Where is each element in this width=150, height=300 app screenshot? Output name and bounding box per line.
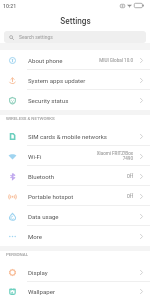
staticText: Bluetooth bbox=[28, 173, 55, 180]
staticText: WIRELESS & NETWORKS bbox=[6, 116, 55, 121]
staticText: More bbox=[28, 233, 43, 240]
staticText: Security status bbox=[28, 97, 69, 104]
button[interactable]: Portable hotspot bbox=[0, 186, 150, 206]
staticText: Portable hotspot bbox=[28, 193, 74, 200]
staticText: About phone bbox=[28, 57, 63, 64]
button[interactable]: Bluetooth bbox=[0, 166, 150, 186]
button[interactable]: Wi-Fi bbox=[0, 146, 150, 166]
staticText: Display bbox=[28, 269, 48, 276]
button[interactable]: Search settings bbox=[4, 31, 146, 43]
button[interactable]: Wallpaper bbox=[0, 282, 150, 300]
staticText: 10:21 bbox=[3, 3, 17, 9]
button[interactable]: Display bbox=[0, 262, 150, 282]
staticText: Settings bbox=[60, 16, 91, 26]
staticText: Off bbox=[126, 194, 133, 199]
button[interactable]: Data usage bbox=[0, 206, 150, 226]
staticText: MIUI Global 10.0 bbox=[99, 58, 133, 63]
staticText: Wallpaper bbox=[28, 288, 56, 295]
staticText: Wi-Fi bbox=[28, 153, 42, 160]
button[interactable]: SIM cards & mobile networks bbox=[0, 126, 150, 146]
button[interactable]: About phone bbox=[0, 50, 150, 70]
staticText: Search settings bbox=[19, 34, 53, 40]
staticText: Off bbox=[126, 174, 133, 179]
staticText: Data usage bbox=[28, 213, 59, 220]
staticText: Xiaomi FRITZ!Box 7490 bbox=[96, 151, 133, 161]
button[interactable]: Security status bbox=[0, 90, 150, 110]
button[interactable]: More bbox=[0, 226, 150, 246]
staticText: PERSONAL bbox=[6, 252, 28, 257]
staticText: System apps updater bbox=[28, 77, 86, 84]
button[interactable]: System apps updater bbox=[0, 70, 150, 90]
staticText: SIM cards & mobile networks bbox=[28, 133, 107, 140]
